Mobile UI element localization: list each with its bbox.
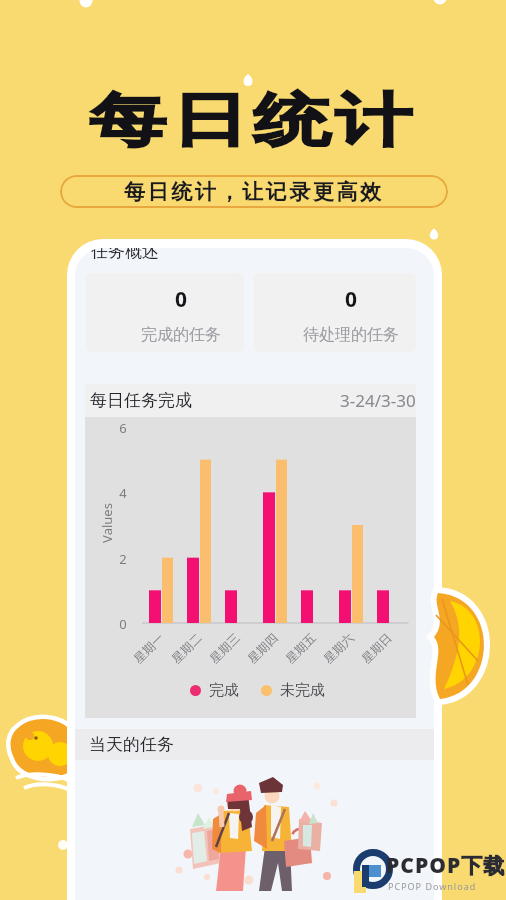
staticText: PCPOP Download — [388, 880, 477, 892]
staticText: 每日统计，让记录更高效 — [124, 179, 384, 205]
button[interactable]: 0 — [254, 273, 416, 352]
button[interactable]: 当天的任务 — [75, 729, 434, 760]
staticText: 星期三 — [207, 630, 243, 666]
staticText: 完成的任务 — [141, 325, 221, 345]
staticText: PCPOP下载 — [386, 851, 506, 880]
staticText: 2 — [119, 550, 127, 568]
staticText: 0 — [345, 285, 358, 314]
staticText: 未完成 — [280, 681, 325, 700]
button[interactable]: 0 — [86, 273, 244, 352]
staticText: 星期六 — [321, 630, 357, 666]
staticText: 每日统计 — [87, 84, 415, 156]
staticText: Values — [98, 498, 116, 548]
button[interactable]: 每日统计，让记录更高效 — [60, 175, 448, 208]
staticText: 0 — [175, 285, 188, 314]
staticText: 星期一 — [131, 630, 167, 666]
staticText: 星期二 — [169, 630, 205, 666]
staticText: 星期四 — [245, 630, 281, 666]
staticText: 待处理的任务 — [303, 325, 399, 345]
staticText: 0 — [119, 615, 127, 633]
staticText: 3-24/3-30 — [340, 389, 416, 412]
staticText: 当天的任务 — [89, 734, 174, 755]
staticText: 星期日 — [359, 630, 395, 666]
staticText: 任务概述 — [91, 248, 159, 262]
staticText: 6 — [119, 419, 127, 437]
staticText: 4 — [119, 484, 127, 502]
staticText: 星期五 — [283, 630, 319, 666]
staticText: 每日任务完成 — [90, 390, 192, 411]
staticText: 完成 — [209, 681, 239, 700]
